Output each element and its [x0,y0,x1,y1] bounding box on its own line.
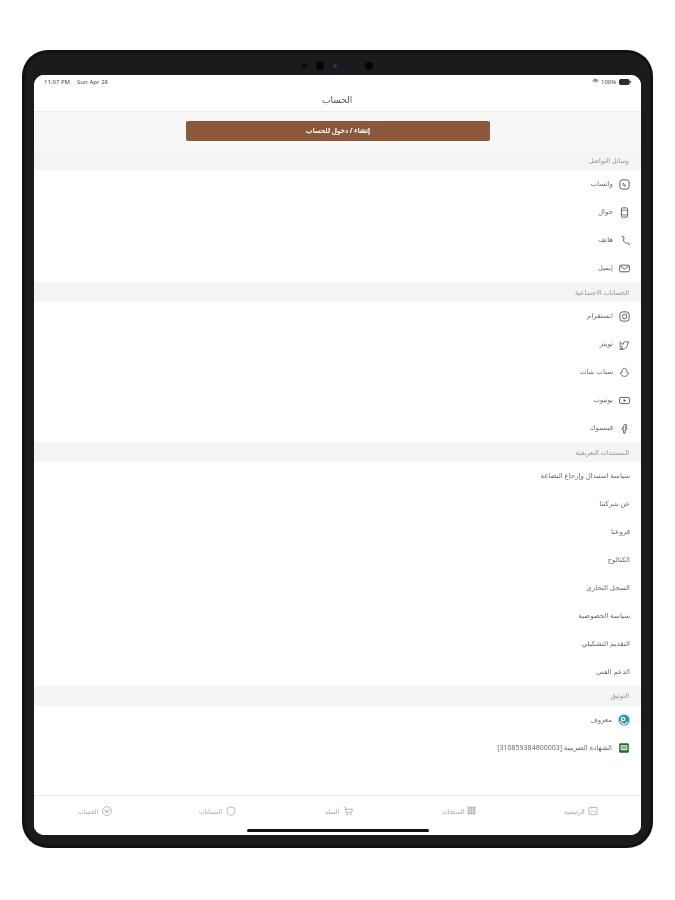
staticText: الحسابات الاجتماعية [575,288,629,297]
button[interactable]: سياسة الخصوصية [34,602,641,630]
button[interactable]: عن شركتنا [34,490,641,518]
staticText: الحساب [78,808,99,815]
button[interactable]: انستقرام [34,302,641,330]
button[interactable]: جوال [34,198,641,226]
button[interactable]: السلة [278,796,399,826]
staticText: معروف [590,716,612,724]
staticText: الشهادة الضريبية [310859384800003] [497,743,612,753]
button[interactable]: الرئيسية [520,796,641,826]
button[interactable]: السجل التجاري [34,574,641,602]
button[interactable]: سياسة استبدال وإرجاع البضاعة [34,462,641,490]
button[interactable]: سناب شات [34,358,641,386]
button[interactable]: فروعنا [34,518,641,546]
staticText: الدعم الفني [596,667,630,677]
button[interactable]: هاتف [34,226,641,254]
button[interactable]: فيسبوك [34,414,641,442]
staticText: فيسبوك [589,424,613,432]
staticText: Sun Apr 28 [77,78,108,86]
staticText: التوثيق [610,692,629,700]
staticText: إنشاء / دخول للحساب [306,126,370,136]
button[interactable]: الحساب [34,796,156,826]
button[interactable]: يوتيوب [34,386,641,414]
button[interactable]: الكتالوج [34,546,641,574]
staticText: الكتالوج [607,556,630,564]
staticText: سناب شات [579,367,613,377]
staticText: التقديم التشكيلي [581,639,630,649]
button[interactable]: تويتر [34,330,641,358]
staticText: السجل التجاري [586,583,630,593]
staticText: السلة [325,808,340,815]
staticText: المنتجات [442,808,464,815]
staticText: 100% [601,78,617,86]
button[interactable]: المنتجات [399,796,520,826]
staticText: سياسة استبدال وإرجاع البضاعة [540,471,630,481]
staticText: عن شركتنا [599,499,630,509]
staticText: الحساب [322,95,353,105]
button[interactable]: التقديم التشكيلي [34,630,641,658]
button[interactable]: إنشاء / دخول للحساب [186,121,490,141]
staticText: سياسة الخصوصية [578,611,630,621]
button[interactable]: واتساب [34,170,641,198]
button[interactable]: إيميل [34,254,641,282]
staticText: فروعنا [610,528,630,536]
button[interactable]: معروف [34,706,641,734]
staticText: إيميل [597,264,613,272]
staticText: المستندات التعريفية [575,448,629,457]
button[interactable]: الشهادة الضريبية [310859384800003] [34,734,641,762]
staticText: وسائل التواصل [588,156,629,165]
staticText: جوال [598,208,613,216]
staticText: انستقرام [587,312,613,320]
staticText: 11:07 PM [44,78,71,86]
staticText: الضمانات [199,808,223,815]
staticText: هاتف [597,236,613,244]
staticText: الرئيسية [564,808,585,815]
staticText: تويتر [599,340,613,348]
staticText: يوتيوب [593,396,613,404]
staticText: واتساب [590,180,613,188]
button[interactable]: الضمانات [156,796,278,826]
button[interactable]: الدعم الفني [34,658,641,686]
